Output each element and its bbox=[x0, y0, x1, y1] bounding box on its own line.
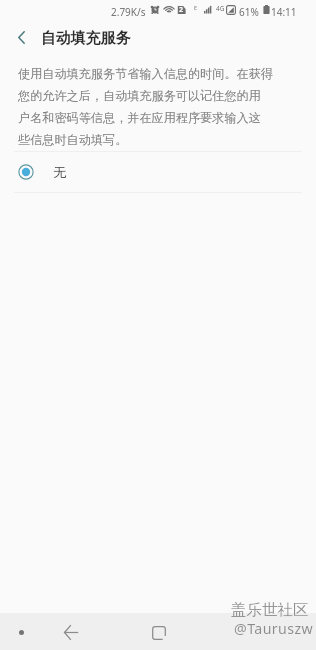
staticText: 无 bbox=[53, 164, 67, 181]
staticText: 2.79K/s bbox=[111, 5, 146, 19]
staticText: 自动填充服务 bbox=[41, 29, 131, 48]
staticText: 2 bbox=[179, 5, 184, 15]
button[interactable]: Back bbox=[6, 22, 36, 52]
staticText: 盖乐世社区 bbox=[231, 600, 309, 620]
button[interactable]: 无 bbox=[0, 152, 316, 192]
staticText: 使用自动填充服务节省输入信息的时间。在获得 您的允许之后，自动填充服务可以记住您… bbox=[18, 66, 273, 147]
button[interactable]: Back bbox=[46, 614, 96, 650]
button[interactable]: Menu bbox=[3, 614, 39, 650]
button[interactable]: Recent apps bbox=[134, 614, 184, 650]
staticText: 4G bbox=[216, 4, 225, 13]
staticText: @Tauruszw bbox=[234, 619, 314, 638]
staticText: 61% bbox=[239, 5, 259, 19]
staticText: 14:11 bbox=[271, 5, 297, 19]
staticText: E bbox=[194, 4, 198, 11]
